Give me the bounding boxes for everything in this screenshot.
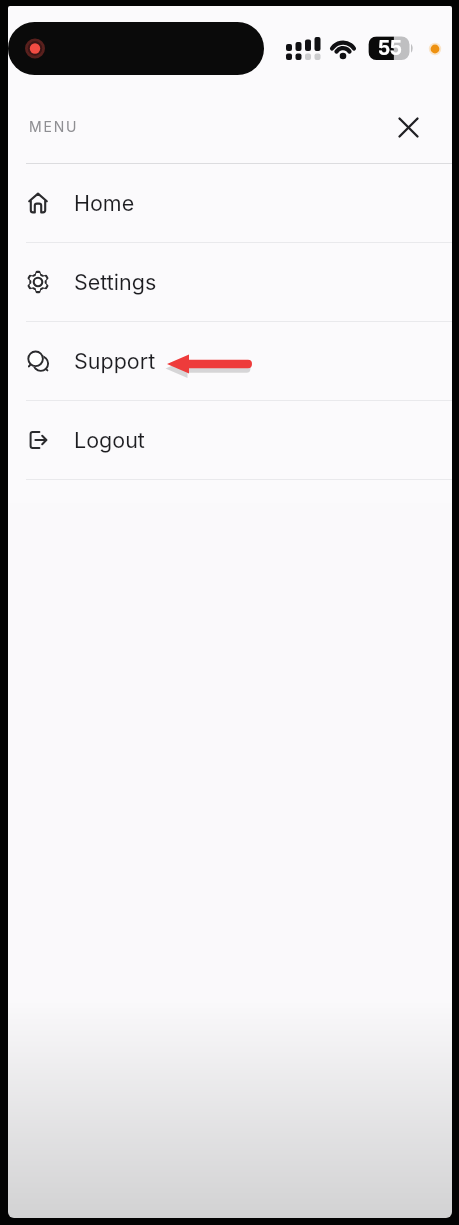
staticText: Support [74, 348, 156, 374]
staticText: Logout [74, 427, 145, 453]
staticText: MENU [29, 118, 79, 135]
staticText: Home [74, 190, 135, 216]
staticText: 55 [369, 36, 410, 60]
button[interactable]: Settings [8, 243, 452, 321]
button[interactable] [391, 110, 425, 144]
button[interactable]: Logout [8, 401, 452, 479]
button[interactable]: Support [8, 322, 452, 400]
button[interactable]: Home [8, 164, 452, 242]
staticText: Settings [74, 269, 157, 295]
